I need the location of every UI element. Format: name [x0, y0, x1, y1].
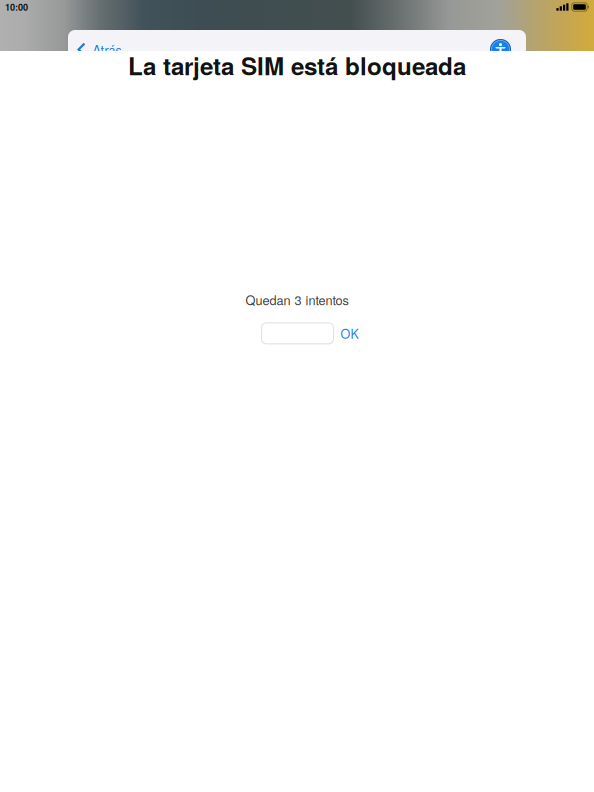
button[interactable]: Atrás — [68, 39, 130, 59]
staticText: OK — [340, 324, 358, 342]
staticText: La tarjeta SIM está bloqueada — [128, 48, 466, 83]
staticText: 10:00 — [5, 0, 28, 14]
staticText: Atrás — [92, 40, 121, 58]
staticText: Quedan 3 intentos — [245, 291, 348, 309]
button[interactable]: OK — [340, 324, 358, 342]
button[interactable]: Accesibilidad — [486, 39, 526, 60]
